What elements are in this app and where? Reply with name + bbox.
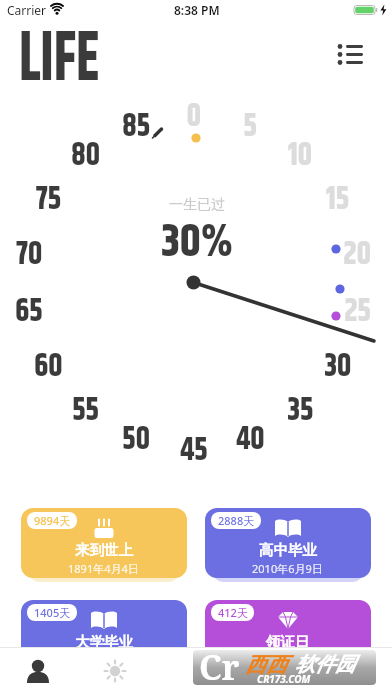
staticText: 80 [71, 130, 101, 180]
staticText: 大学毕业 [75, 633, 133, 647]
staticText: 5 [244, 101, 257, 151]
staticText: 412天 [218, 605, 248, 620]
staticText: 15 [326, 174, 350, 224]
staticText: 60 [34, 341, 63, 391]
staticText: 35 [287, 385, 314, 435]
staticText: 85 [122, 101, 151, 151]
staticText: 40 [236, 414, 265, 464]
staticText: 10 [288, 130, 313, 180]
button[interactable] [95, 652, 135, 692]
staticText: 25 [344, 286, 372, 336]
staticText: 65 [15, 286, 43, 336]
button[interactable]: 9894天 [21, 508, 187, 578]
staticText: 一生已过 [169, 196, 225, 214]
staticText: 高中毕业 [259, 541, 317, 559]
button[interactable]: 1405天 [21, 600, 187, 647]
staticText: CR173.COM [257, 672, 311, 685]
staticText: 8:38 PM [174, 2, 220, 18]
staticText: 1891年4月4日 [68, 561, 139, 576]
staticText: 软件园 [295, 652, 355, 677]
staticText: 2010年6月9日 [252, 561, 323, 576]
staticText: Carrier [7, 2, 47, 18]
staticText: 0 [187, 91, 201, 141]
staticText: 9894天 [34, 513, 71, 528]
staticText: 20 [343, 229, 372, 279]
staticText: 2888天 [218, 513, 255, 528]
staticText: 75 [36, 174, 62, 224]
staticText: 30% [161, 207, 233, 279]
staticText: 70 [16, 229, 43, 279]
button[interactable] [330, 38, 372, 72]
staticText: 西西 [245, 652, 287, 678]
staticText: 45 [180, 425, 208, 475]
staticText: 来到世上 [75, 541, 133, 559]
staticText: Cr [199, 650, 240, 685]
button[interactable]: 2888天 [205, 508, 371, 578]
staticText: 领证日 [266, 633, 310, 647]
staticText: 55 [72, 385, 100, 435]
staticText: 50 [122, 414, 151, 464]
staticText: 30 [324, 341, 352, 391]
button[interactable] [18, 652, 58, 692]
staticText: 1405天 [34, 605, 71, 620]
staticText: LIFE [19, 8, 100, 114]
button[interactable]: 412天 [205, 600, 371, 647]
